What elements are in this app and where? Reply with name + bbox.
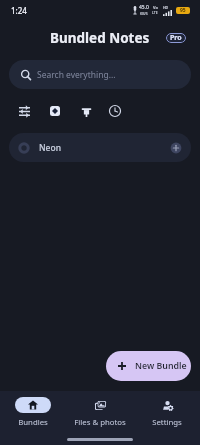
- button[interactable]: View style: [41, 99, 69, 123]
- staticText: Neon: [39, 142, 61, 154]
- button[interactable]: Neon: [9, 133, 191, 162]
- staticText: LTE: [152, 10, 158, 15]
- staticText: HD: [163, 5, 169, 10]
- staticText: 95: [180, 7, 186, 14]
- button[interactable]: Bundles: [0, 391, 66, 433]
- button[interactable]: New Bundle: [106, 351, 191, 381]
- button[interactable]: Files & photos: [66, 391, 133, 433]
- staticText: Bundles: [18, 417, 48, 428]
- button[interactable]: Recent: [101, 99, 129, 123]
- staticText: Vo: [153, 5, 158, 10]
- button[interactable]: Pro: [166, 33, 186, 43]
- button[interactable]: Settings: [133, 391, 200, 433]
- button[interactable]: Search everything...: [9, 60, 191, 89]
- button[interactable]: Filter options: [10, 99, 38, 123]
- button[interactable]: Pinned: [72, 99, 100, 123]
- staticText: 1:24: [11, 5, 27, 16]
- staticText: Files & photos: [74, 417, 126, 428]
- staticText: Settings: [152, 417, 182, 428]
- staticText: Search everything...: [37, 69, 116, 81]
- staticText: 45.0: [139, 4, 149, 11]
- staticText: New Bundle: [135, 360, 187, 372]
- staticText: Pro: [170, 33, 182, 43]
- staticText: KB/S: [140, 11, 148, 16]
- staticText: Bundled Notes: [50, 29, 150, 47]
